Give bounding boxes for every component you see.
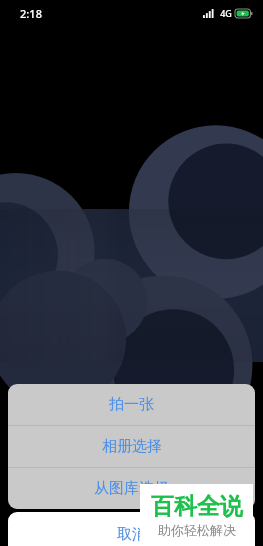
button[interactable]: 取消 bbox=[8, 512, 255, 546]
button[interactable]: 拍一张 bbox=[8, 384, 255, 425]
staticText: 取消 bbox=[117, 525, 147, 544]
staticText: 4G bbox=[220, 7, 232, 19]
staticText: 相册选择 bbox=[102, 437, 162, 456]
staticText: 从图库选择 bbox=[94, 479, 169, 498]
staticText: 百科全说 bbox=[151, 492, 243, 521]
staticText: 2:18 bbox=[20, 6, 42, 21]
staticText: 助你轻松解决 bbox=[158, 522, 236, 538]
button[interactable]: 从图库选择 bbox=[8, 468, 255, 509]
staticText: 拍一张 bbox=[109, 395, 154, 414]
button[interactable]: 相册选择 bbox=[8, 426, 255, 467]
